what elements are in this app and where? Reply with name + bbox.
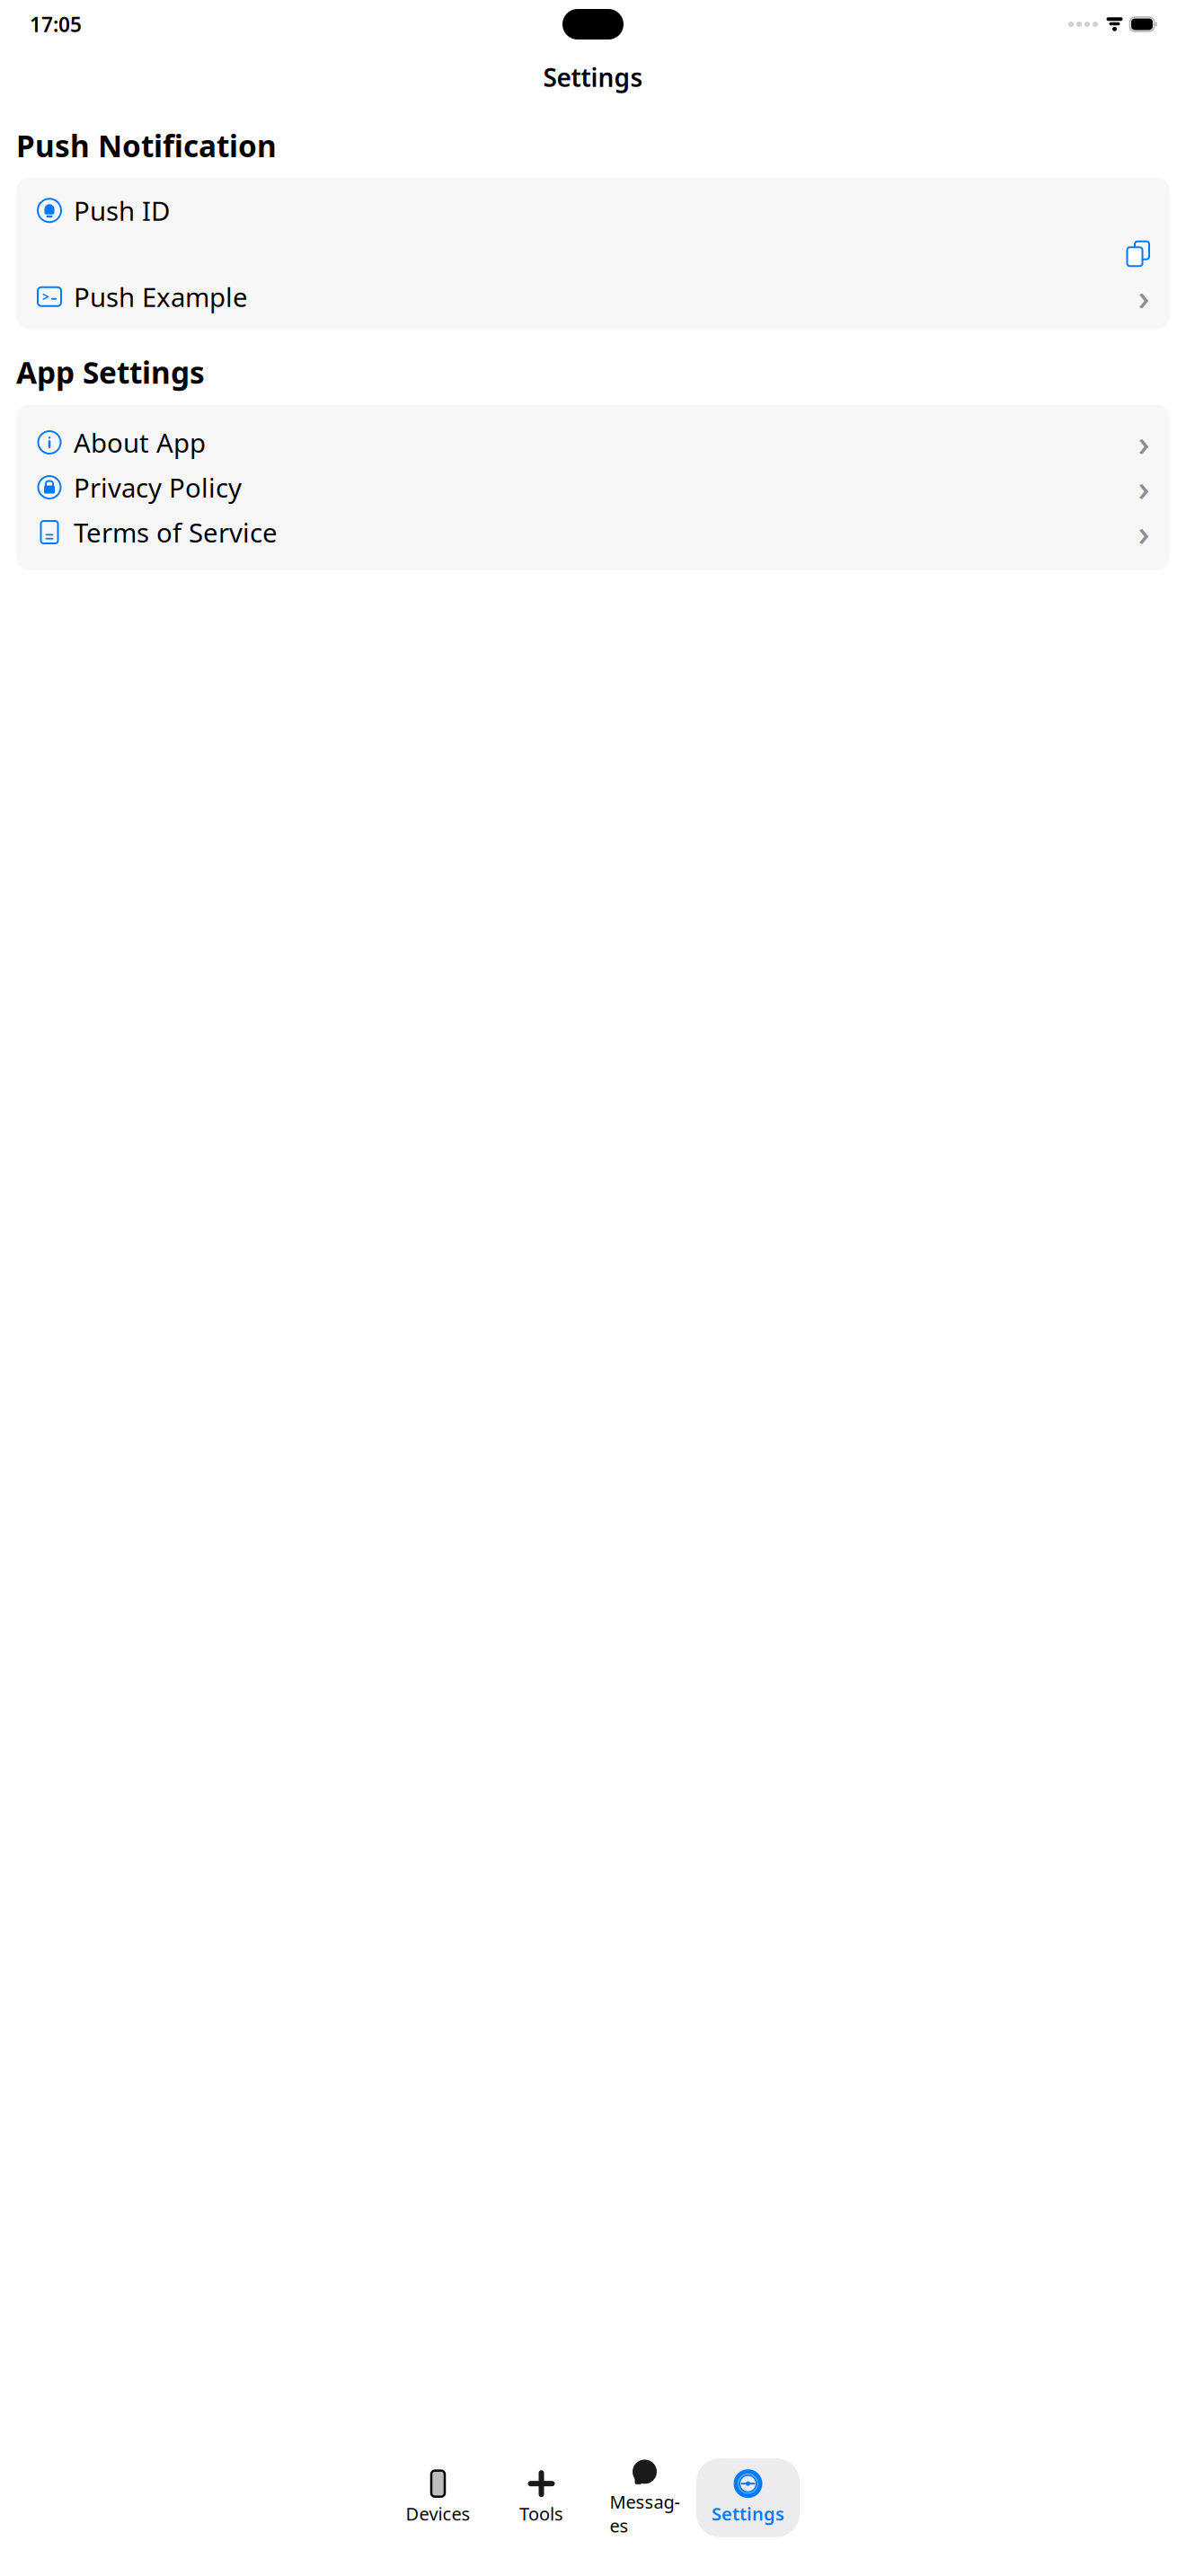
staticText: Tools <box>519 2502 563 2526</box>
staticText: › <box>1138 419 1150 466</box>
staticText: App Settings <box>16 352 205 392</box>
button[interactable]: Copy Push ID <box>16 233 1170 274</box>
staticText: Settings <box>543 61 643 94</box>
staticText: Devices <box>406 2502 470 2526</box>
staticText: Terms of Service <box>74 515 278 550</box>
button[interactable]: Push ID <box>16 188 1170 233</box>
button[interactable]: Devices <box>386 2459 490 2537</box>
staticText: > <box>42 289 49 305</box>
staticText: Push Example <box>74 279 248 314</box>
staticText: 17:05 <box>30 11 82 38</box>
staticText: › <box>1138 463 1150 511</box>
button[interactable]: Tools <box>490 2459 593 2537</box>
staticText: › <box>1138 508 1150 556</box>
staticText: Settings <box>712 2502 784 2526</box>
staticText: Push ID <box>74 193 170 228</box>
button[interactable]: Terms of Service <box>16 510 1170 555</box>
staticText: About App <box>74 425 206 460</box>
staticText: Messages <box>610 2490 680 2537</box>
button[interactable]: Privacy Policy <box>16 465 1170 510</box>
button[interactable]: > <box>16 274 1170 319</box>
button[interactable]: About App <box>16 420 1170 465</box>
staticText: Push Notification <box>16 126 277 166</box>
staticText: › <box>1138 273 1150 320</box>
button[interactable]: Settings <box>696 2459 800 2537</box>
staticText: Privacy Policy <box>74 470 242 505</box>
button[interactable]: Messages <box>593 2447 696 2549</box>
